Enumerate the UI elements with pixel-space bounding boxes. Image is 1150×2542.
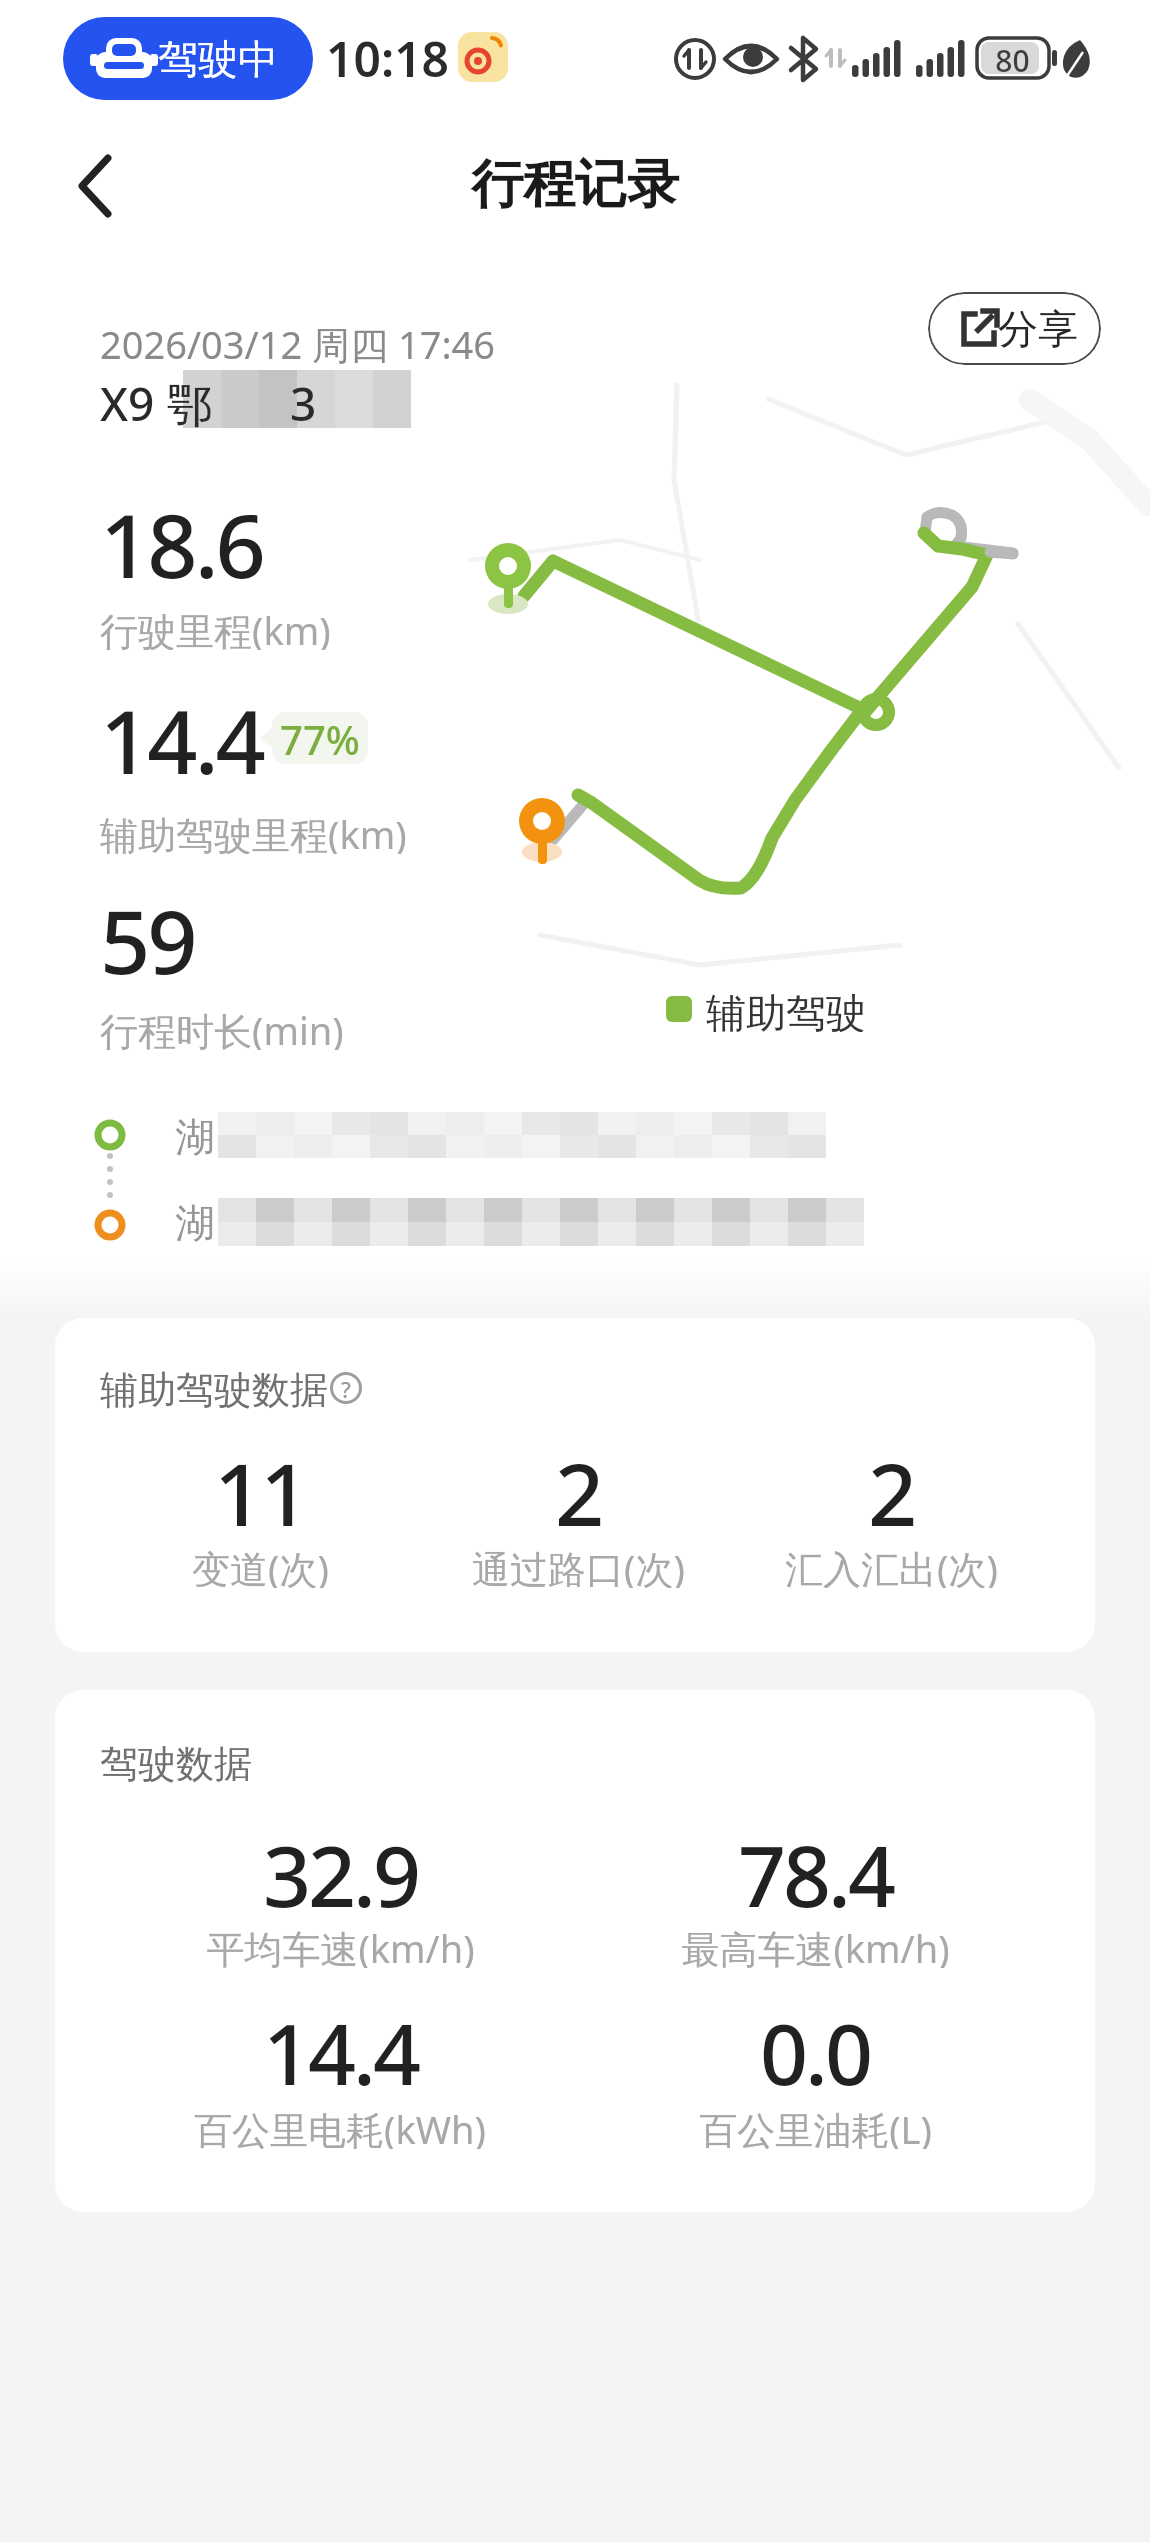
staticText: 汇入汇出(次) bbox=[785, 1542, 998, 1588]
staticText: 平均车速(km/h) bbox=[206, 1922, 475, 1968]
staticText: X9 鄂 bbox=[100, 372, 213, 428]
staticText: 11 bbox=[214, 1434, 307, 1551]
staticText: 77% bbox=[280, 712, 360, 764]
staticText: 14.4 bbox=[263, 1995, 418, 2109]
staticText: 辅助驾驶数据 bbox=[100, 1366, 328, 1410]
staticText: 0.0 bbox=[760, 1995, 870, 2109]
staticText: 2 bbox=[868, 1434, 915, 1551]
staticText: 百公里电耗(kWh) bbox=[194, 2103, 486, 2149]
staticText: 最高车速(km/h) bbox=[681, 1922, 950, 1968]
staticText: 14.4 bbox=[100, 680, 263, 800]
staticText: 2026/03/12 周四 17:46 bbox=[100, 318, 496, 364]
staticText: 变道(次) bbox=[192, 1542, 329, 1588]
staticText: 湖 bbox=[175, 1112, 215, 1158]
staticText: ? bbox=[341, 1374, 351, 1402]
staticText: 80 bbox=[995, 40, 1030, 78]
staticText: 行程时长(min) bbox=[100, 1004, 344, 1050]
staticText: 驾驶数据 bbox=[100, 1740, 252, 1784]
button[interactable] bbox=[60, 140, 140, 230]
staticText: 百公里油耗(L) bbox=[699, 2103, 932, 2149]
staticText: 行驶里程(km) bbox=[100, 604, 331, 650]
button[interactable] bbox=[63, 17, 313, 100]
staticText: 驾驶中 bbox=[158, 34, 278, 84]
staticText: 18.6 bbox=[100, 484, 263, 604]
staticText: 辅助驾驶里程(km) bbox=[100, 808, 407, 854]
staticText: 2 bbox=[555, 1434, 602, 1551]
staticText: 行程记录 bbox=[471, 152, 679, 218]
button[interactable] bbox=[928, 292, 1101, 365]
staticText: 湖 bbox=[175, 1198, 215, 1244]
staticText: 3 bbox=[290, 372, 317, 428]
staticText: 32.9 bbox=[263, 1817, 418, 1931]
staticText: 10:18 bbox=[326, 26, 450, 91]
staticText: 辅助驾驶 bbox=[706, 988, 866, 1032]
staticText: 分享 bbox=[998, 304, 1078, 354]
staticText: 通过路口(次) bbox=[472, 1542, 685, 1588]
staticText: 59 bbox=[100, 880, 195, 1000]
staticText: 78.4 bbox=[738, 1817, 893, 1931]
